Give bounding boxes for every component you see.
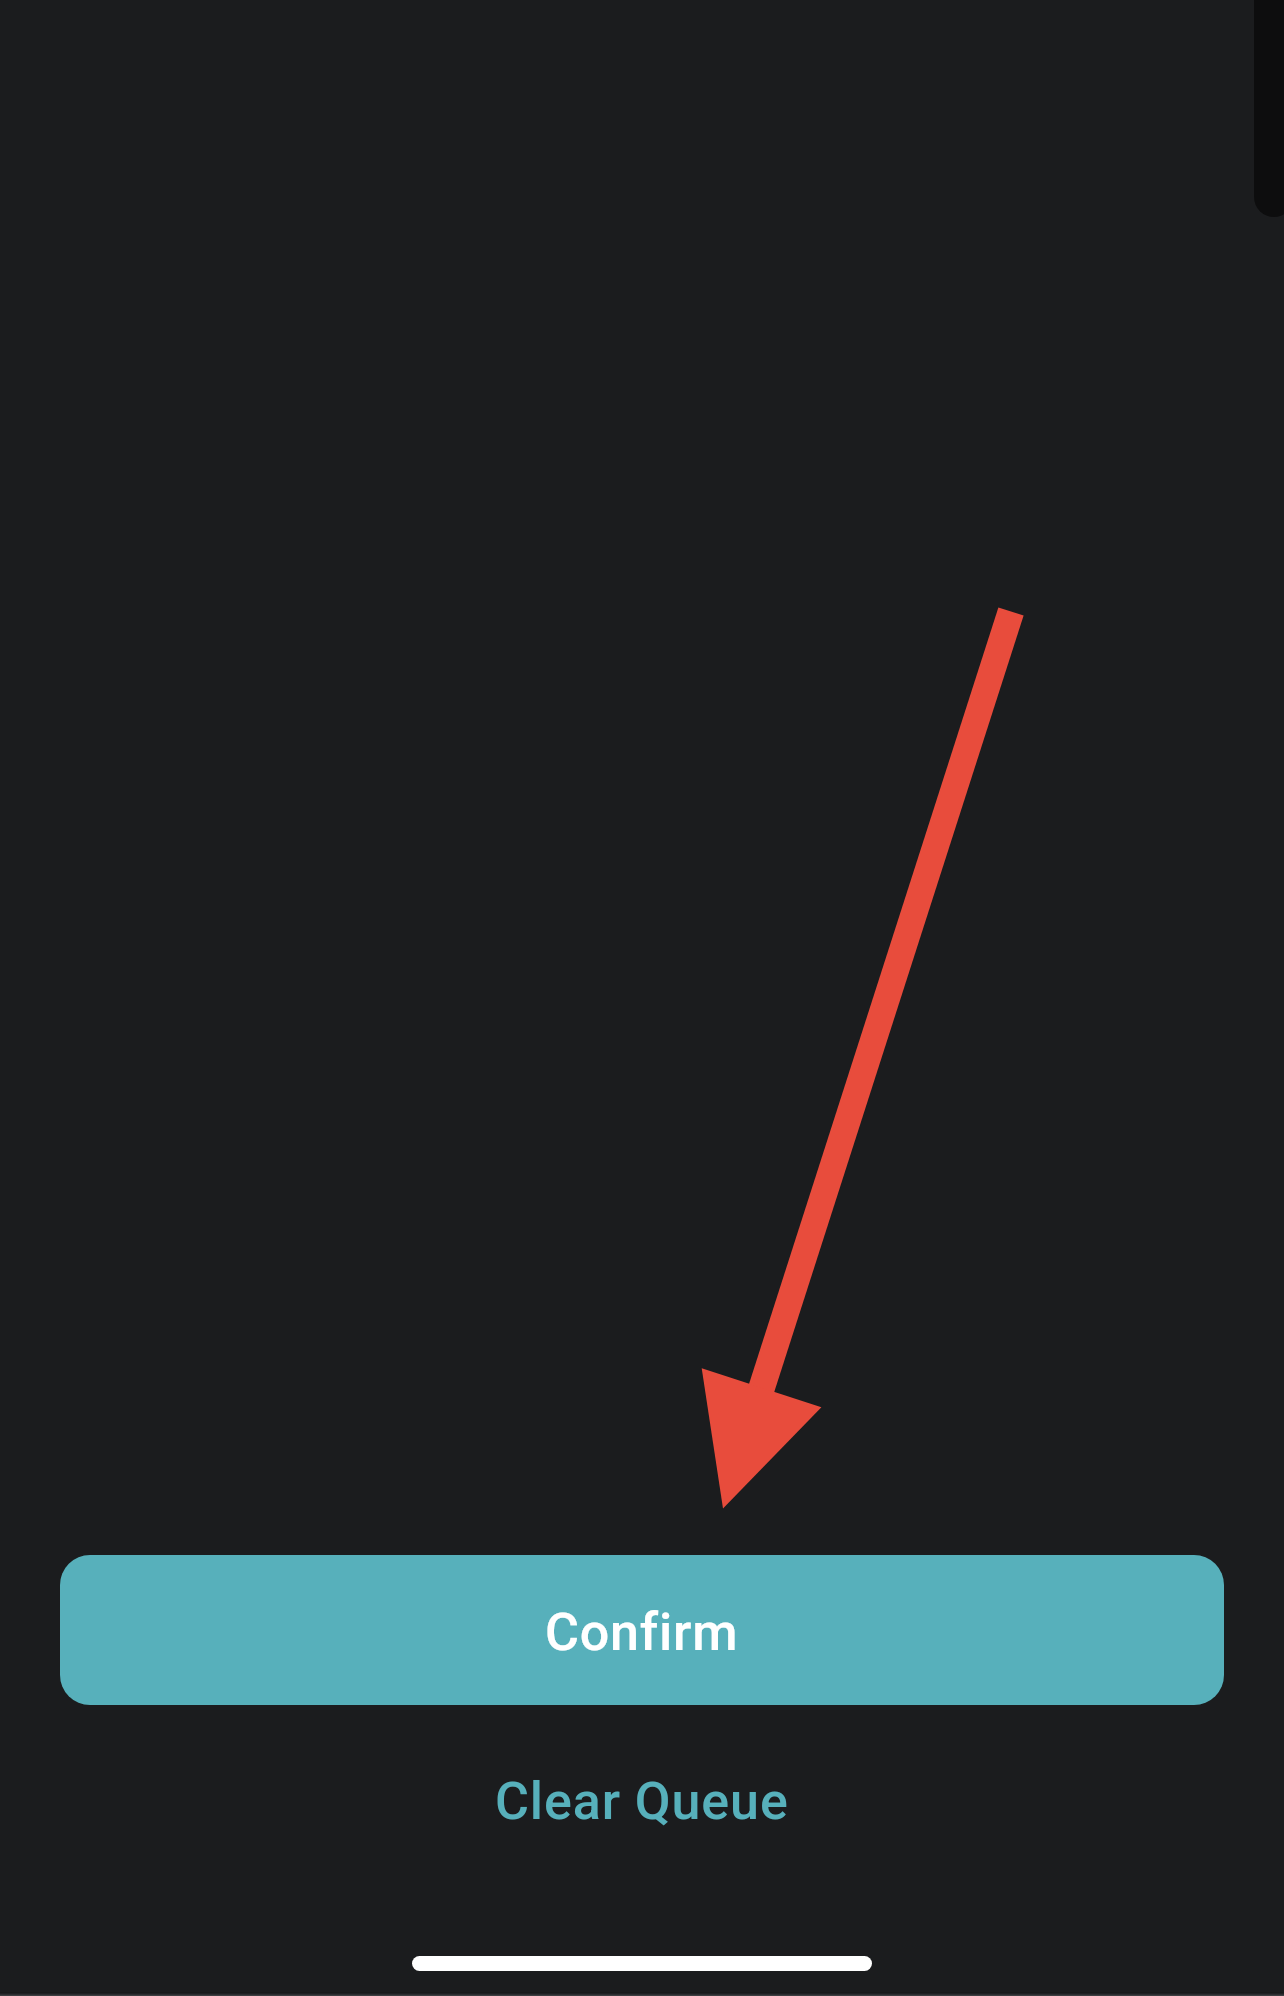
- staticText: Clear Queue: [495, 1771, 789, 1832]
- button[interactable]: Confirm: [60, 1555, 1224, 1705]
- button[interactable]: Clear Queue: [0, 1741, 1284, 1861]
- staticText: Confirm: [545, 1602, 739, 1663]
- other: Annotation arrow pointing at Confirm: [0, 0, 1284, 1996]
